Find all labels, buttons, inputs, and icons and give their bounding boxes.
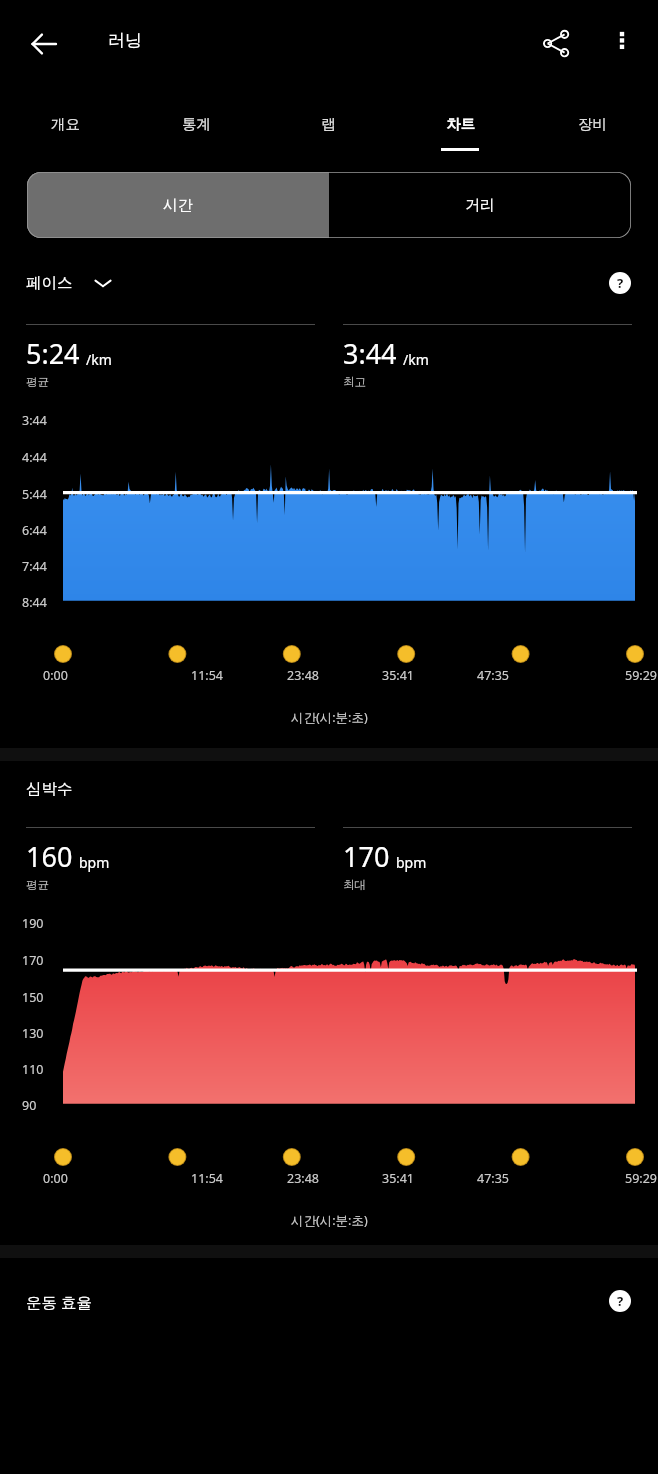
staticText: 러닝 (108, 30, 142, 51)
staticText: 평균 (26, 375, 49, 389)
staticText: 110 (22, 1061, 44, 1078)
staticText: 차트 (446, 115, 475, 133)
staticText: /km (86, 350, 112, 369)
staticText: 심박수 (26, 779, 73, 799)
button[interactable]: Share (527, 14, 585, 72)
staticText: 개요 (51, 115, 80, 133)
staticText: 90 (22, 1097, 37, 1114)
staticText: /km (403, 350, 429, 369)
button[interactable]: Back (14, 14, 74, 74)
staticText: 거리 (465, 196, 495, 215)
staticText: 장비 (578, 115, 607, 133)
staticText: 11:54 (191, 667, 223, 684)
staticText: 23:48 (287, 1170, 319, 1187)
staticText: 랩 (321, 115, 336, 133)
button[interactable]: More options (596, 14, 648, 66)
button[interactable]: 시간 (27, 172, 329, 238)
staticText: 130 (22, 1025, 44, 1042)
staticText: 7:44 (22, 558, 47, 575)
button[interactable]: Help (598, 1279, 642, 1323)
staticText: 통계 (182, 115, 211, 133)
staticText: 5:44 (22, 486, 47, 503)
staticText: 운동 효율 (26, 1291, 93, 1312)
staticText: 페이스 (26, 273, 73, 293)
staticText: 최대 (343, 878, 366, 892)
button[interactable]: 페이스 (26, 273, 113, 293)
staticText: 시간 (163, 196, 193, 215)
staticText: 47:35 (477, 1170, 509, 1187)
staticText: 평균 (26, 878, 49, 892)
staticText: 6:44 (22, 522, 47, 539)
staticText: 최고 (343, 375, 366, 389)
staticText: 35:41 (382, 1170, 414, 1187)
staticText: 시간(시:분:초) (291, 709, 368, 726)
staticText: 4:44 (22, 449, 47, 466)
staticText: ? (617, 1292, 624, 1310)
staticText: 35:41 (382, 667, 414, 684)
button[interactable]: 차트 (394, 88, 526, 160)
button[interactable]: 개요 (0, 88, 131, 160)
staticText: 0:00 (43, 1170, 68, 1187)
staticText: 47:35 (477, 667, 509, 684)
button[interactable]: Help (598, 261, 642, 305)
button[interactable]: 랩 (262, 88, 394, 160)
staticText: 11:54 (191, 1170, 223, 1187)
staticText: 8:44 (22, 594, 47, 611)
staticText: 59:29 (625, 667, 657, 684)
staticText: bpm (79, 853, 110, 872)
staticText: 190 (22, 915, 44, 932)
staticText: ? (617, 274, 624, 292)
staticText: 3:44 (22, 412, 47, 429)
staticText: 59:29 (625, 1170, 657, 1187)
button[interactable]: 거리 (329, 172, 631, 238)
staticText: 5:24 (26, 335, 80, 372)
staticText: 3:44 (343, 335, 397, 372)
staticText: 170 (22, 952, 44, 969)
staticText: 150 (22, 989, 44, 1006)
staticText: 0:00 (43, 667, 68, 684)
staticText: 170 (343, 838, 390, 875)
button[interactable]: 운동 효율 (26, 1291, 93, 1312)
staticText: 시간(시:분:초) (291, 1212, 368, 1229)
button[interactable]: 장비 (526, 88, 658, 160)
staticText: 23:48 (287, 667, 319, 684)
staticText: 160 (26, 838, 73, 875)
staticText: bpm (396, 853, 427, 872)
button[interactable]: 통계 (131, 88, 262, 160)
